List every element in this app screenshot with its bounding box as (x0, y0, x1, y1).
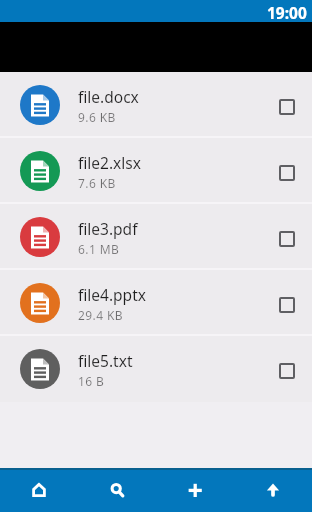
button[interactable]: file3.pdf (0, 204, 312, 270)
staticText: file.docx (78, 86, 139, 107)
staticText: 6.1 MB (78, 241, 120, 257)
button[interactable] (279, 297, 295, 313)
button[interactable] (279, 363, 295, 379)
button[interactable]: file4.pptx (0, 270, 312, 336)
staticText: file3.pdf (78, 218, 138, 239)
staticText: file4.pptx (78, 284, 146, 305)
button[interactable] (0, 468, 78, 512)
staticText: file2.xlsx (78, 152, 141, 173)
button[interactable] (279, 99, 295, 115)
button[interactable]: file2.xlsx (0, 138, 312, 204)
staticText: 9.6 KB (78, 109, 116, 125)
button[interactable]: file.docx (0, 72, 312, 138)
staticText: file5.txt (78, 350, 133, 371)
staticText: 7.6 KB (78, 175, 116, 191)
button[interactable] (156, 468, 234, 512)
staticText: 29.4 KB (78, 307, 123, 323)
button[interactable] (234, 468, 312, 512)
button[interactable]: file5.txt (0, 336, 312, 402)
button[interactable] (279, 231, 295, 247)
button[interactable] (279, 165, 295, 181)
button[interactable] (78, 468, 156, 512)
staticText: 16 B (78, 373, 105, 389)
staticText: 19:00 (267, 2, 307, 23)
